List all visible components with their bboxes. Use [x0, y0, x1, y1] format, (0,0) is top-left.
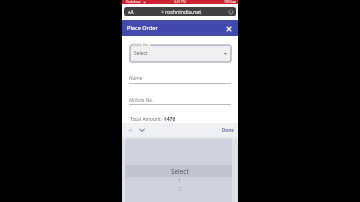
staticText: ᴀA: [128, 9, 134, 15]
staticText: Select: [134, 50, 148, 57]
staticText: Table No.: [133, 42, 150, 47]
staticText: 4:31 PM: [174, 0, 186, 4]
button[interactable]: ᴀA: [124, 7, 236, 16]
button[interactable]: Select: [130, 45, 231, 62]
staticText: 2: [178, 185, 182, 193]
staticText: Place Order: [127, 24, 158, 32]
staticText: Mobile No.: [129, 97, 154, 104]
button[interactable]: Done: [222, 127, 234, 133]
staticText: ₹470: [164, 116, 176, 123]
button[interactable]: Close: [224, 24, 233, 33]
button[interactable]: Next field: [139, 127, 145, 133]
staticText: Vodafone: [126, 0, 141, 4]
staticText: 1: [178, 176, 182, 184]
other: Reload: [229, 10, 233, 14]
staticText: 100%: [224, 0, 233, 4]
staticText: roshnindia.net: [165, 8, 202, 15]
staticText: Select: [171, 167, 189, 176]
staticText: Total Amount:: [130, 116, 164, 123]
button[interactable]: Previous field: [128, 128, 133, 133]
staticText: Name: [129, 75, 143, 82]
